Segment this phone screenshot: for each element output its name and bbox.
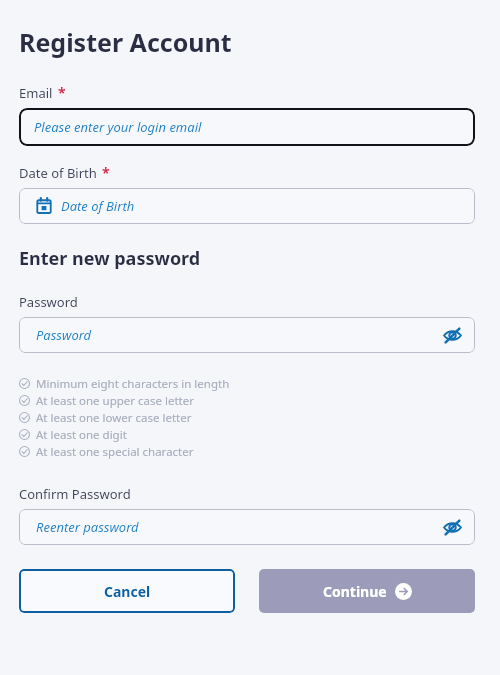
button[interactable]: Password bbox=[19, 317, 475, 353]
staticText: Enter new password bbox=[19, 246, 201, 271]
staticText: Date of Birth bbox=[61, 197, 135, 215]
staticText: * bbox=[102, 163, 110, 182]
staticText: Minimum eight characters in length bbox=[36, 376, 230, 392]
staticText: At least one upper case letter bbox=[36, 393, 195, 409]
staticText: Register Account bbox=[19, 25, 232, 59]
button[interactable]: Show password bbox=[439, 514, 465, 540]
staticText: Password bbox=[19, 293, 78, 311]
staticText: Continue bbox=[323, 582, 387, 601]
staticText: Password bbox=[36, 326, 92, 344]
button[interactable]: Reenter password bbox=[19, 509, 475, 545]
button[interactable]: Show password bbox=[439, 322, 465, 348]
staticText: At least one special character bbox=[36, 444, 194, 460]
staticText: At least one lower case letter bbox=[36, 410, 192, 426]
staticText: Cancel bbox=[104, 582, 151, 601]
button[interactable]: Date of Birth bbox=[19, 188, 475, 224]
button[interactable]: Cancel bbox=[19, 569, 235, 613]
staticText: Email bbox=[19, 84, 53, 102]
staticText: Please enter your login email bbox=[34, 118, 202, 136]
button[interactable]: Please enter your login email bbox=[19, 108, 475, 146]
staticText: At least one digit bbox=[36, 427, 127, 443]
button[interactable]: Continue bbox=[259, 569, 475, 613]
staticText: Reenter password bbox=[36, 518, 139, 536]
staticText: * bbox=[58, 83, 66, 102]
staticText: Date of Birth bbox=[19, 164, 97, 182]
staticText: Confirm Password bbox=[19, 485, 131, 503]
